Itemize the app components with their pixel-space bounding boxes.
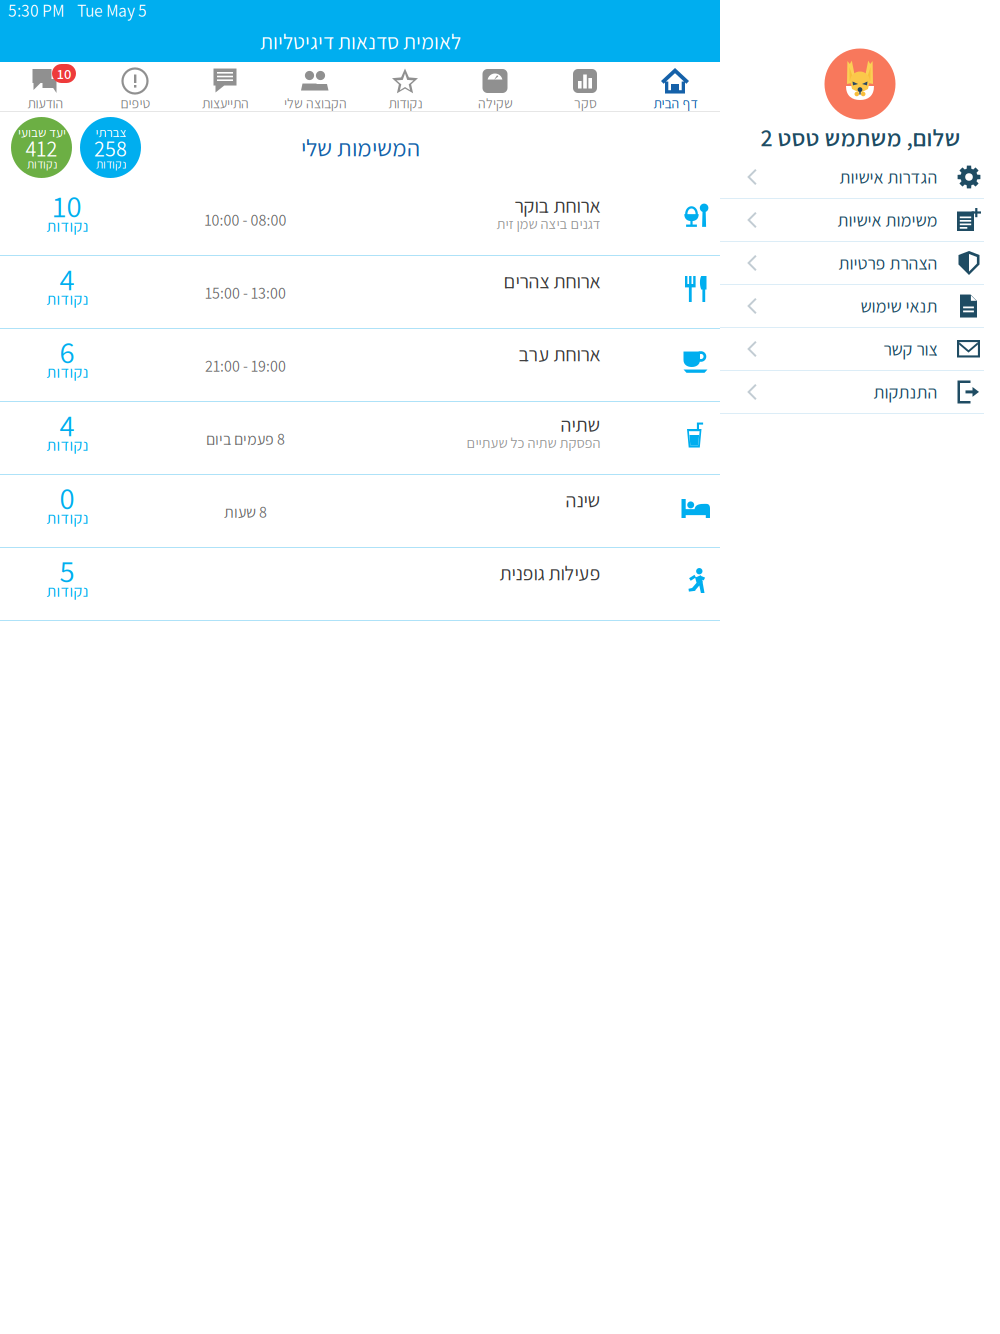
button[interactable]: 4 [0, 256, 720, 329]
staticText: נקודות [46, 361, 88, 382]
staticText: דגנים ביצה שמן זית [496, 214, 600, 233]
button[interactable]: 6 [0, 329, 720, 402]
staticText: 6 [59, 332, 74, 372]
button[interactable]: תנאי שימוש [720, 285, 1000, 328]
staticText: התנתקות [873, 380, 937, 404]
staticText: ‫08:00 - 10:00 [204, 209, 286, 230]
button[interactable]: 4 [0, 402, 720, 475]
staticText: נקודות [26, 156, 56, 172]
staticText: תנאי שימוש [860, 294, 937, 318]
button[interactable]: סקר [540, 62, 630, 111]
staticText: ארוחת ערב [518, 341, 600, 367]
staticText: Tue May 5 [77, 0, 147, 22]
staticText: הגדרות אישיות [839, 165, 937, 189]
staticText: התייעצות [201, 94, 248, 112]
staticText: לאומית סדנאות דיגיטליות [259, 27, 460, 55]
button[interactable]: טיפים [90, 62, 180, 111]
staticText: ‫19:00 - 21:00 [204, 355, 285, 376]
staticText: 258 [94, 134, 127, 163]
button[interactable]: הקבוצה שלי [270, 62, 360, 111]
staticText: 5 [59, 551, 74, 591]
button[interactable]: 10 [0, 183, 720, 256]
staticText: שינה [565, 487, 600, 513]
button[interactable]: משימות אישיות [720, 199, 1000, 242]
button[interactable]: צור קשר [720, 328, 1000, 371]
staticText: ארוחת בוקר [514, 192, 600, 219]
staticText: ‫13:00 - 15:00 [204, 282, 285, 303]
staticText: פעילות גופנית [499, 560, 600, 586]
staticText: צור קשר [883, 337, 937, 361]
staticText: נקודות [46, 215, 88, 236]
staticText: נקודות [95, 156, 125, 172]
button[interactable]: 5 [0, 548, 720, 621]
staticText: 10 [52, 186, 81, 226]
staticText: ‫8 פעמים ביום [205, 428, 284, 449]
button[interactable]: התנתקות [720, 371, 1000, 414]
staticText: צברתי [95, 123, 126, 141]
button[interactable]: התייעצות [180, 62, 270, 111]
staticText: ארוחת צהרים [503, 268, 600, 294]
button[interactable]: 10 [0, 62, 90, 111]
staticText: נקודות [46, 288, 88, 309]
staticText: הקבוצה שלי [283, 94, 346, 112]
staticText: הפסקת שתיה כל שעתיים [466, 433, 600, 452]
button[interactable]: 0 [0, 475, 720, 548]
staticText: הצהרת פרטיות [838, 251, 937, 275]
button[interactable]: נקודות [360, 62, 450, 111]
staticText: 10 [57, 64, 71, 83]
button[interactable]: שקילה [450, 62, 540, 111]
staticText: הודעות [27, 94, 63, 112]
staticText: טיפים [120, 94, 150, 112]
staticText: משימות אישיות [837, 208, 937, 232]
button[interactable]: הצהרת פרטיות [720, 242, 1000, 285]
staticText: 0 [59, 478, 74, 518]
staticText: סקר [573, 94, 596, 112]
staticText: 4 [59, 259, 74, 299]
staticText: 412 [25, 134, 57, 163]
staticText: שקילה [477, 94, 512, 112]
staticText: ‫8 שעות [223, 501, 266, 522]
staticText: שתיה [560, 411, 600, 438]
staticText: המשימות שלי [300, 132, 419, 163]
staticText: נקודות [388, 94, 422, 112]
staticText: נקודות [46, 580, 88, 601]
button[interactable]: דף הבית [630, 62, 720, 111]
button[interactable]: הגדרות אישיות [720, 156, 1000, 199]
staticText: 5:30 PM [8, 0, 64, 22]
staticText: שלום, משתמש טסט 2 [760, 122, 960, 153]
staticText: דף הבית [653, 94, 697, 112]
staticText: 4 [59, 405, 74, 445]
staticText: יעד שבועי [17, 123, 65, 141]
staticText: נקודות [46, 434, 88, 455]
staticText: נקודות [46, 507, 88, 528]
